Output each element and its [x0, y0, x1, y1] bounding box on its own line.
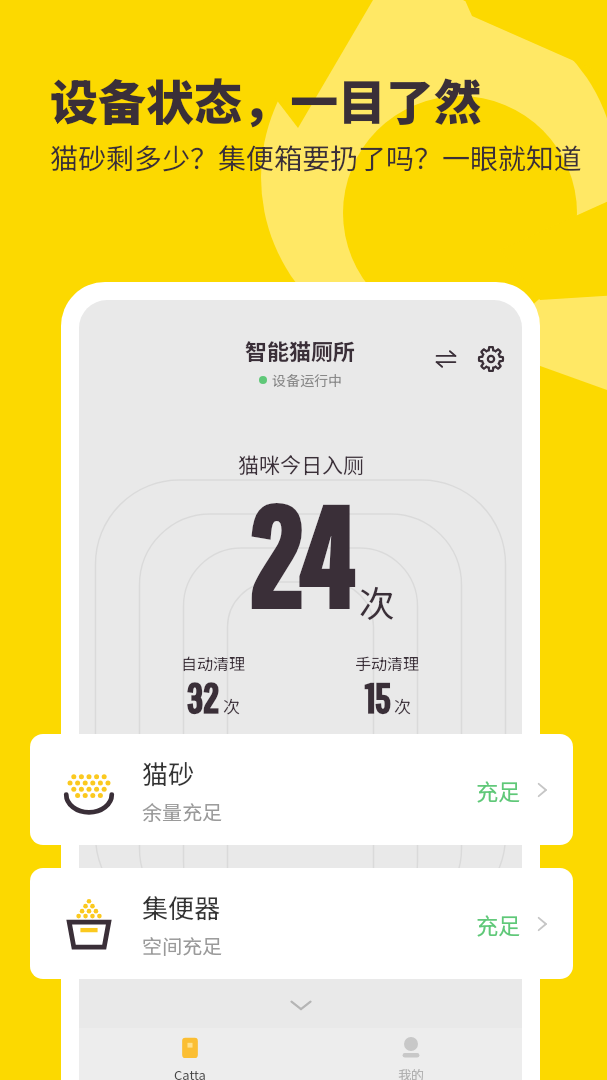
- staticText: 自动清理: [181, 651, 246, 674]
- staticText: 智能猫厕所: [245, 334, 356, 366]
- staticText: 集便器: [142, 888, 221, 926]
- staticText: 猫咪今日入厕: [238, 449, 364, 479]
- staticText: 24: [247, 479, 352, 633]
- staticText: 15: [365, 675, 390, 721]
- button[interactable]: Expand: [284, 988, 318, 1022]
- button[interactable]: 集便器: [30, 868, 573, 979]
- staticText: 次: [223, 693, 240, 718]
- staticText: 余量充足: [142, 797, 222, 826]
- staticText: 设备状态，一目了然: [50, 64, 483, 134]
- staticText: 设备运行中: [272, 370, 342, 390]
- button[interactable]: 我的: [300, 1028, 522, 1080]
- staticText: 猫砂剩多少？集便箱要扔了吗？一眼就知道: [50, 137, 583, 178]
- staticText: 我的: [398, 1065, 425, 1080]
- staticText: 次: [394, 693, 411, 718]
- staticText: 32: [186, 675, 219, 721]
- button[interactable]: 猫砂: [30, 734, 573, 845]
- staticText: Catta: [174, 1065, 206, 1080]
- staticText: 猫砂: [142, 754, 195, 792]
- staticText: 手动清理: [355, 651, 420, 674]
- staticText: 次: [359, 575, 396, 627]
- staticText: 充足: [476, 908, 521, 940]
- button[interactable]: Settings: [476, 344, 506, 374]
- button[interactable]: Switch device: [433, 346, 459, 372]
- staticText: 充足: [476, 774, 521, 806]
- button[interactable]: Catta: [79, 1028, 300, 1080]
- staticText: 空间充足: [142, 931, 222, 960]
